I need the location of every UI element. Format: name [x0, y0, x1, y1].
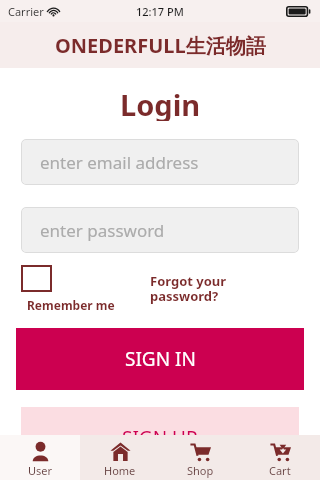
- staticText: Cart: [269, 463, 291, 478]
- staticText: 12:17 PM: [136, 4, 184, 19]
- button[interactable]: Forgot your password?: [150, 272, 227, 305]
- button[interactable]: enter email address: [21, 139, 299, 185]
- staticText: Home: [104, 463, 136, 478]
- staticText: Shop: [187, 463, 214, 478]
- staticText: Login: [120, 85, 201, 121]
- staticText: Carrier: [8, 4, 44, 19]
- staticText: ONEDERFULL生活物語: [55, 32, 266, 59]
- staticText: SIGN IN: [125, 346, 196, 372]
- button[interactable]: User: [0, 435, 80, 480]
- staticText: Forgot your password?: [150, 272, 227, 305]
- staticText: SIGN UP: [122, 425, 198, 451]
- staticText: Remember me: [27, 297, 115, 313]
- button[interactable]: Cart: [240, 435, 320, 480]
- staticText: enter email address: [40, 151, 199, 174]
- button[interactable]: SIGN UP: [21, 407, 299, 469]
- button[interactable]: enter password: [21, 207, 299, 253]
- button[interactable]: Home: [80, 435, 160, 480]
- button[interactable]: SIGN IN: [16, 328, 304, 390]
- button[interactable]: Shop: [160, 435, 240, 480]
- staticText: User: [28, 463, 53, 478]
- button[interactable]: Remember me: [21, 265, 109, 313]
- staticText: enter password: [40, 219, 165, 242]
